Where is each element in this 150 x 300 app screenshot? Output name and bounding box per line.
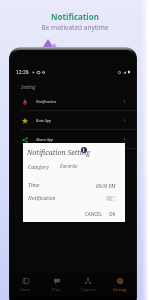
staticText: CANCEL xyxy=(85,211,102,217)
button[interactable]: Explore xyxy=(72,273,104,296)
staticText: Notification xyxy=(36,99,56,104)
staticText: i xyxy=(83,147,85,153)
button[interactable]: OK xyxy=(107,209,118,219)
button[interactable]: Info xyxy=(81,147,87,153)
button[interactable]: Share App xyxy=(10,130,136,149)
staticText: Setting xyxy=(21,84,36,90)
staticText: Favorite xyxy=(60,163,78,169)
staticText: OK xyxy=(109,211,116,217)
button[interactable]: Notification toggle xyxy=(106,196,116,201)
staticText: Diary xyxy=(20,287,31,292)
staticText: Rate App xyxy=(36,118,52,123)
button[interactable]: CANCEL xyxy=(83,209,104,219)
button[interactable]: Notification xyxy=(10,92,136,111)
staticText: Setting xyxy=(113,287,127,292)
staticText: Ping xyxy=(52,287,61,292)
button[interactable]: Rate App xyxy=(10,111,136,130)
staticText: Time xyxy=(28,182,40,189)
button[interactable]: Setting xyxy=(104,273,136,296)
staticText: Share App xyxy=(36,137,54,142)
staticText: Notification Setting xyxy=(27,148,91,158)
staticText: Be motivated anytime xyxy=(41,23,109,32)
staticText: 08:00 PM xyxy=(96,183,116,189)
button[interactable]: Ping xyxy=(41,273,72,296)
staticText: Notification xyxy=(28,195,56,202)
staticText: 12:26 xyxy=(16,69,29,76)
button[interactable]: Diary xyxy=(10,273,41,296)
staticText: Explore xyxy=(81,287,96,292)
staticText: Category xyxy=(28,164,49,171)
staticText: Notification xyxy=(51,11,99,22)
